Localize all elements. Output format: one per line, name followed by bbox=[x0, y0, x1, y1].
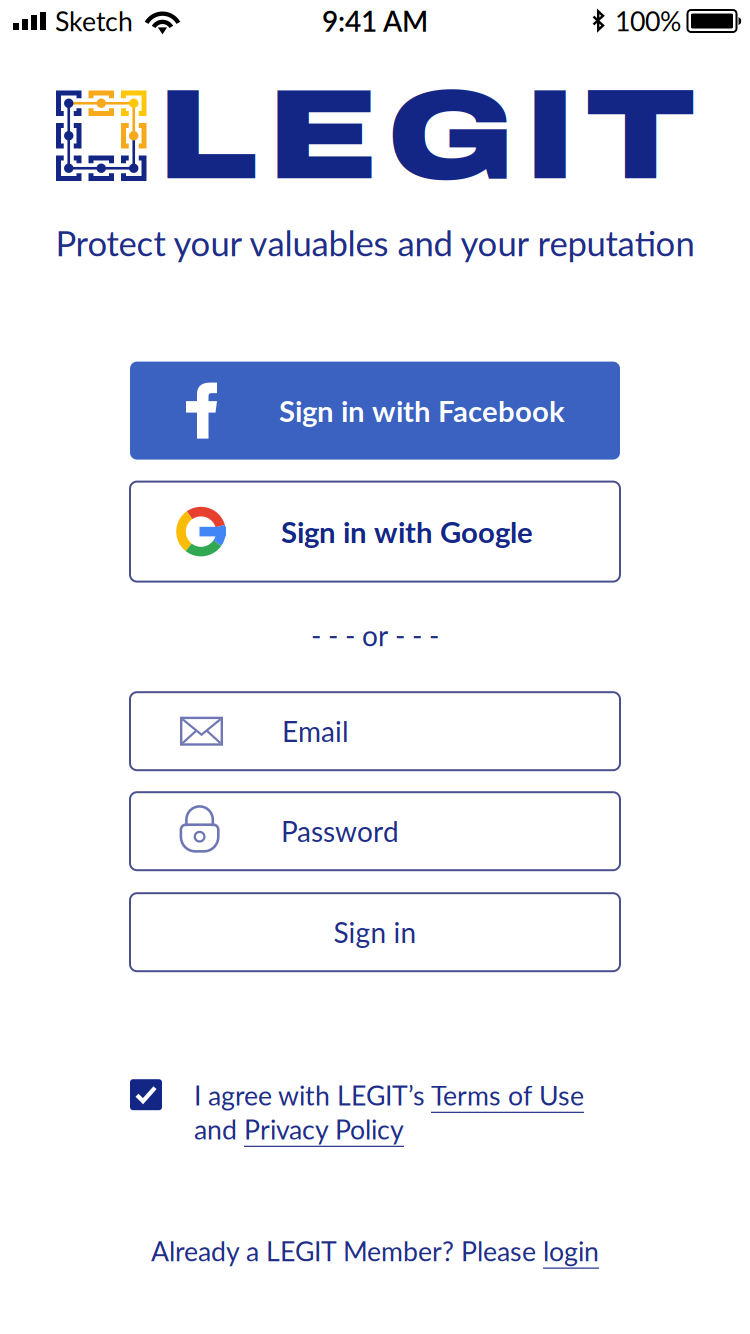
staticText: and Privacy Policy bbox=[194, 1113, 404, 1145]
staticText: LEGIT bbox=[158, 67, 696, 205]
staticText: Sign in with Facebook bbox=[279, 393, 565, 428]
button[interactable]: Already a LEGIT Member? Please login bbox=[0, 1228, 750, 1274]
staticText: Password bbox=[281, 814, 399, 848]
button[interactable]: Sign in with Google bbox=[130, 482, 620, 582]
staticText: Sign in bbox=[333, 915, 416, 949]
button[interactable]: Password bbox=[130, 792, 620, 870]
staticText: 100% bbox=[615, 5, 681, 37]
staticText: Already a LEGIT Member? Please login bbox=[151, 1235, 599, 1267]
button[interactable]: I agree to the terms bbox=[130, 1079, 162, 1110]
staticText: Sketch bbox=[55, 5, 133, 37]
staticText: Email bbox=[282, 714, 349, 748]
button[interactable]: Sign in with Facebook bbox=[130, 362, 620, 460]
staticText: I agree with LEGIT’s Terms of Use bbox=[194, 1079, 584, 1111]
button[interactable]: Sign in bbox=[130, 893, 620, 971]
staticText: 9:41 AM bbox=[322, 4, 428, 38]
staticText: Sign in with Google bbox=[281, 514, 533, 549]
button[interactable]: Email bbox=[130, 692, 620, 770]
staticText: - - - or - - - bbox=[311, 619, 439, 652]
staticText: Protect your valuables and your reputati… bbox=[55, 222, 694, 264]
